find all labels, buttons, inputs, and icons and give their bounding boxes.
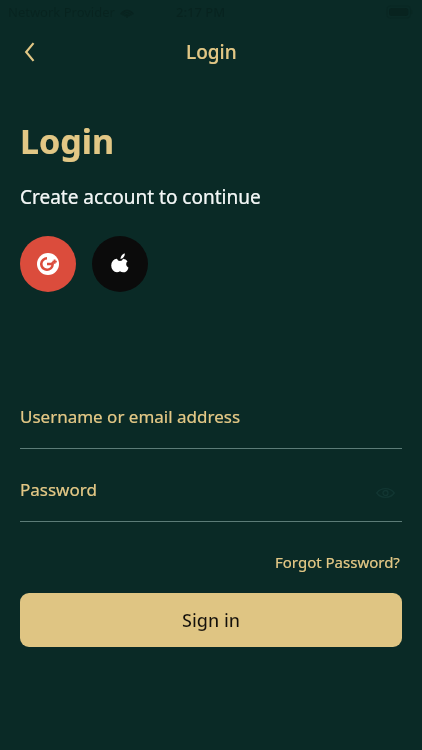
- button[interactable]: Back: [8, 30, 52, 74]
- staticText: Create account to continue: [20, 184, 261, 210]
- staticText: Login: [20, 118, 115, 164]
- button[interactable]: Sign in: [20, 593, 402, 647]
- button[interactable]: Password: [20, 478, 402, 521]
- staticText: Sign in: [182, 608, 241, 633]
- staticText: Password: [20, 478, 97, 501]
- button[interactable]: Username or email address: [20, 405, 402, 448]
- button[interactable]: Forgot Password?: [273, 550, 402, 574]
- staticText: Forgot Password?: [275, 552, 400, 572]
- button[interactable]: Sign in with Apple: [92, 236, 148, 292]
- staticText: Username or email address: [20, 405, 241, 428]
- staticText: Login: [186, 39, 237, 65]
- button[interactable]: Sign in with Google: [20, 236, 76, 292]
